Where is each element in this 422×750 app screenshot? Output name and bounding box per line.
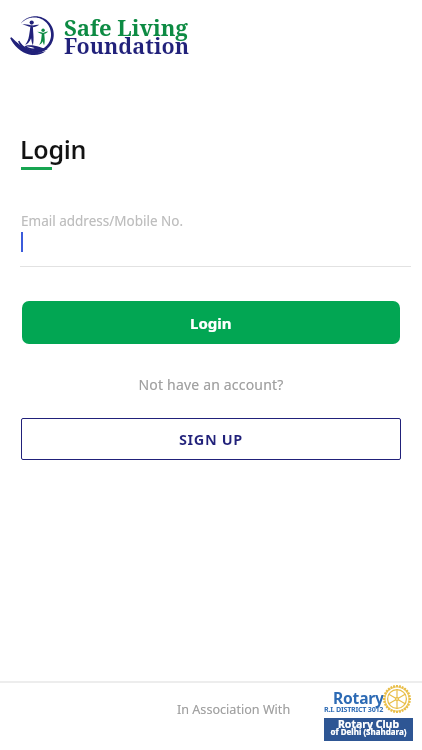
staticText: R.I. DISTRICT 3012 <box>324 704 384 714</box>
staticText: Foundation <box>64 31 190 60</box>
button[interactable]: SIGN UP <box>21 418 401 460</box>
staticText: Login <box>20 132 87 166</box>
staticText: Login <box>190 313 232 333</box>
staticText: of Delhi (Shahdara) <box>324 726 413 737</box>
staticText: Rotary Club <box>324 717 413 731</box>
staticText: Not have an account? <box>0 375 422 394</box>
button[interactable]: Safe Living Foundation logo <box>15 14 56 55</box>
button[interactable]: Email address/Mobile No. <box>20 206 411 267</box>
button[interactable]: Login <box>22 301 400 344</box>
staticText: In Association With <box>177 701 291 718</box>
staticText: Safe Living <box>64 12 188 42</box>
staticText: Email address/Mobile No. <box>21 212 184 230</box>
staticText: Rotary <box>333 687 384 708</box>
staticText: SIGN UP <box>179 429 243 449</box>
